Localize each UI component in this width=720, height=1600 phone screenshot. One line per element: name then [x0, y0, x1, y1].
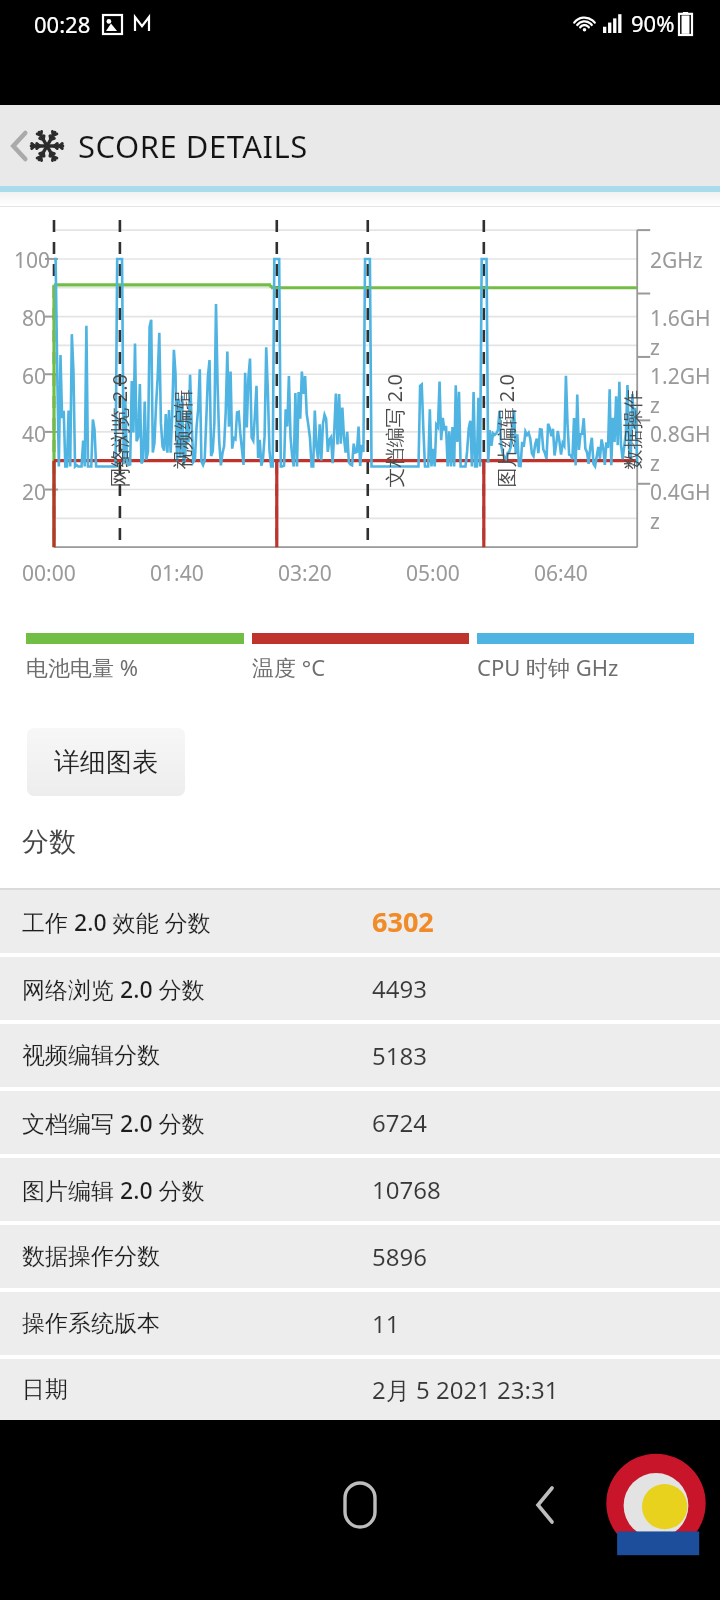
staticText: 视频编辑: [170, 389, 195, 469]
staticText: 详细图表: [54, 746, 158, 779]
staticText: 操作系统版本: [22, 1309, 372, 1338]
staticText: 11: [372, 1307, 400, 1340]
staticText: 数据操作: [620, 389, 645, 469]
staticText: 2GHz: [650, 246, 703, 275]
staticText: 4493: [372, 972, 427, 1005]
staticText: 5183: [372, 1039, 427, 1072]
staticText: 5896: [372, 1240, 427, 1273]
staticText: 0.4GHz: [650, 478, 720, 536]
staticText: 1.2GHz: [650, 362, 720, 420]
staticText: 日期: [22, 1375, 372, 1404]
staticText: 0.8GHz: [650, 420, 720, 478]
staticText: 40: [22, 420, 47, 449]
staticText: 视频编辑分数: [22, 1041, 372, 1070]
staticText: 00:28: [34, 9, 91, 39]
staticText: 20: [22, 478, 47, 507]
staticText: 工作 2.0 效能 分数: [22, 906, 372, 937]
button[interactable]: 工作 2.0 效能 分数: [0, 890, 720, 953]
staticText: 90%: [631, 8, 675, 38]
staticText: 图片编辑 2.0: [492, 373, 519, 487]
staticText: 10768: [372, 1173, 441, 1206]
staticText: 03:20: [278, 559, 332, 588]
staticText: 电池电量 %: [26, 652, 139, 682]
button[interactable]: Back: [0, 121, 68, 171]
button[interactable]: 文档编写 2.0 分数: [0, 1091, 720, 1154]
staticText: 1.6GHz: [650, 304, 720, 362]
staticText: 100: [14, 246, 51, 275]
button[interactable]: 网络浏览 2.0 分数: [0, 957, 720, 1020]
button[interactable]: 视频编辑分数: [0, 1024, 720, 1087]
staticText: 温度 °C: [252, 652, 326, 682]
staticText: 2月 5 2021 23:31: [372, 1373, 559, 1406]
staticText: 00:00: [22, 559, 76, 588]
staticText: SCORE DETAILS: [78, 125, 308, 167]
button[interactable]: 详细图表: [27, 728, 185, 796]
staticText: 05:00: [406, 559, 460, 588]
staticText: 网络浏览 2.0 分数: [22, 973, 372, 1004]
staticText: 网络浏览 2.0: [105, 373, 132, 487]
staticText: 06:40: [534, 559, 588, 588]
staticText: 80: [22, 304, 47, 333]
staticText: 6302: [372, 903, 434, 940]
button[interactable]: 日期: [0, 1359, 720, 1420]
staticText: 文档编写 2.0 分数: [22, 1107, 372, 1138]
staticText: 分数: [22, 825, 76, 859]
staticText: 01:40: [150, 559, 204, 588]
button[interactable]: 图片编辑 2.0 分数: [0, 1158, 720, 1221]
staticText: 图片编辑 2.0 分数: [22, 1174, 372, 1205]
staticText: 数据操作分数: [22, 1242, 372, 1271]
staticText: 6724: [372, 1106, 427, 1139]
button[interactable]: 操作系统版本: [0, 1292, 720, 1355]
button[interactable]: Back: [510, 1470, 580, 1540]
staticText: CPU 时钟 GHz: [477, 652, 619, 682]
button[interactable]: 数据操作分数: [0, 1225, 720, 1288]
staticText: 文档编写 2.0: [380, 373, 407, 487]
button[interactable]: Home: [325, 1470, 395, 1540]
staticText: 60: [22, 362, 47, 391]
